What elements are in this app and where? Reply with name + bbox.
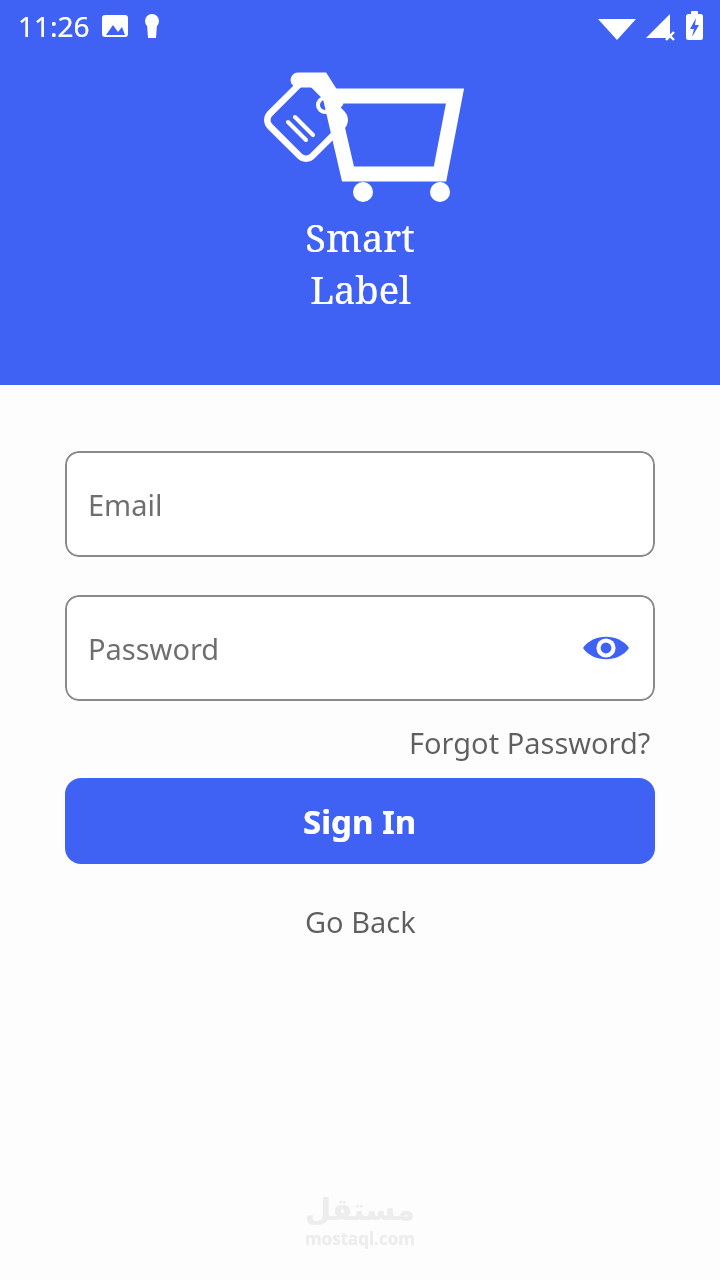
staticText: Go Back [305, 902, 416, 941]
staticText: 11:26 [18, 7, 90, 45]
staticText: Smart [305, 211, 415, 263]
staticText: mostaql.com [305, 1227, 415, 1250]
staticText: Label [310, 263, 411, 315]
button[interactable]: Go Back [289, 896, 432, 947]
staticText: Email [88, 485, 163, 524]
staticText: Password [88, 629, 220, 668]
button[interactable]: Email [65, 451, 655, 557]
staticText: مستقل [305, 1192, 415, 1227]
staticText: Sign In [303, 799, 417, 844]
button[interactable]: Sign In [65, 778, 655, 864]
button[interactable]: Password [65, 595, 655, 701]
button[interactable]: Forgot Password? [405, 719, 655, 766]
button[interactable]: Show password [582, 624, 630, 672]
staticText: Forgot Password? [409, 723, 651, 762]
